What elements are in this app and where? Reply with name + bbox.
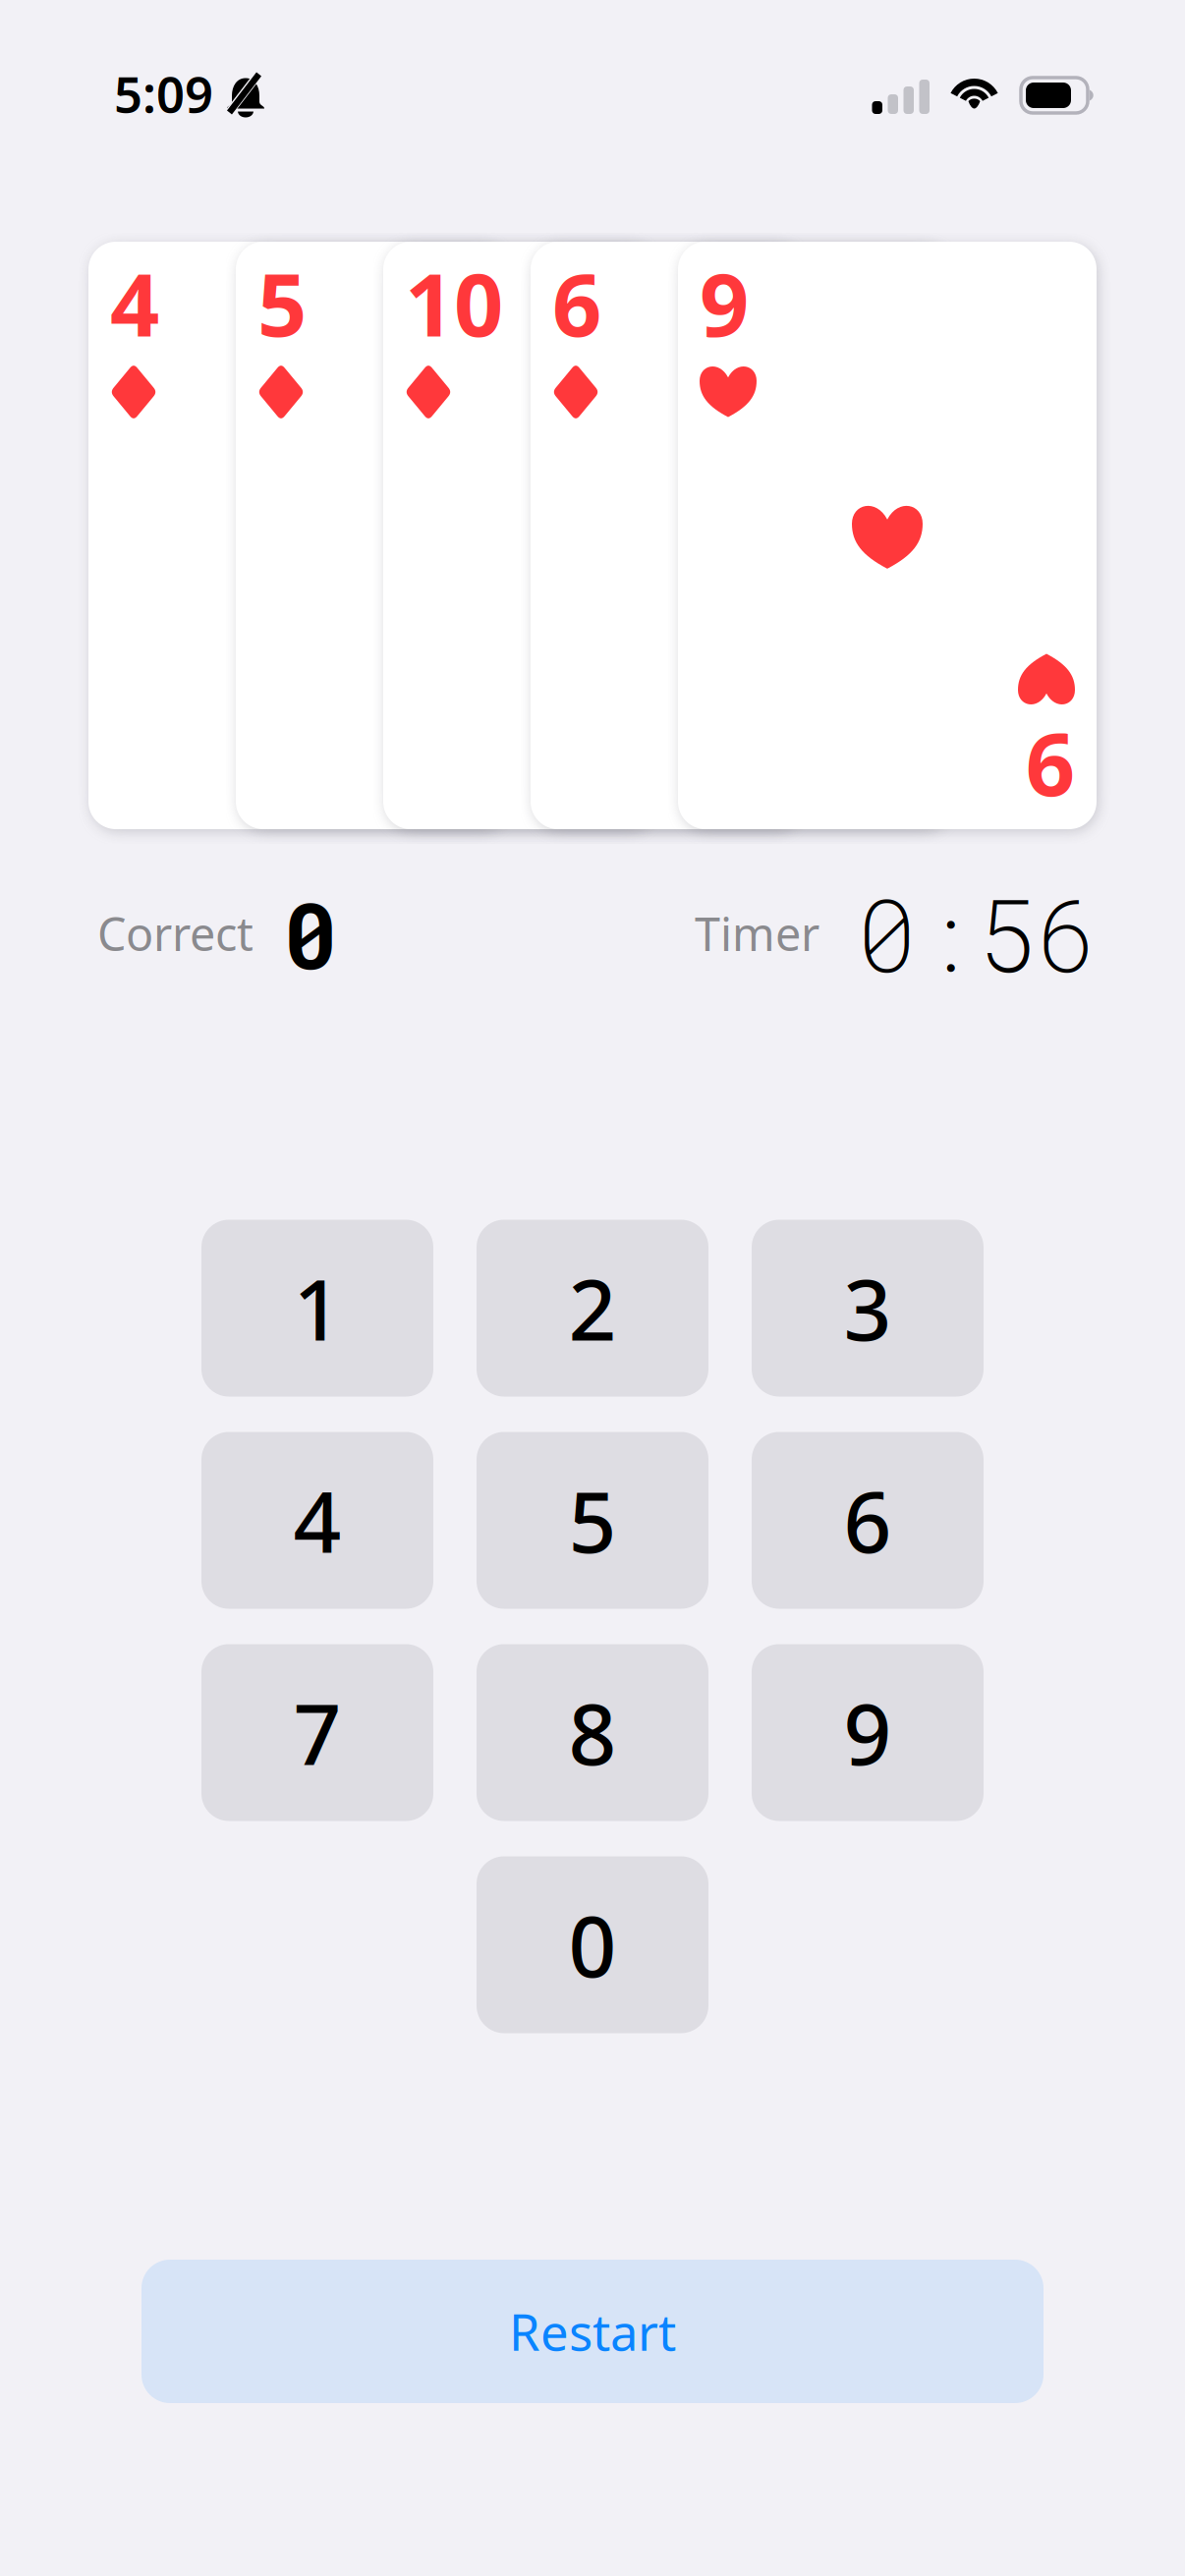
staticText: 5: [568, 1465, 617, 1576]
staticText: 6: [552, 246, 601, 360]
button[interactable]: 0: [477, 1856, 708, 2033]
staticText: 0:56: [857, 868, 1097, 999]
staticText: 2: [568, 1252, 617, 1364]
staticText: 10: [405, 246, 503, 360]
staticText: 6: [844, 1465, 892, 1576]
button[interactable]: 7: [201, 1644, 433, 1821]
button[interactable]: 6: [752, 1432, 984, 1609]
staticText: 4: [110, 246, 159, 360]
staticText: 5:09: [114, 60, 213, 126]
staticText: Restart: [509, 2298, 676, 2364]
staticText: 7: [293, 1677, 341, 1788]
staticText: 9: [700, 246, 749, 360]
button[interactable]: 1: [201, 1220, 433, 1397]
staticText: 9: [844, 1677, 892, 1788]
button[interactable]: 4: [201, 1432, 433, 1609]
staticText: Timer: [695, 903, 819, 964]
button[interactable]: 5: [477, 1432, 708, 1609]
staticText: 0: [283, 873, 338, 994]
staticText: 5: [257, 246, 307, 360]
staticText: 1: [293, 1252, 341, 1364]
button[interactable]: 3: [752, 1220, 984, 1397]
button[interactable]: 8: [477, 1644, 708, 1821]
staticText: 0: [568, 1889, 617, 2000]
button[interactable]: Restart: [141, 2260, 1044, 2403]
staticText: 9: [1018, 593, 1067, 708]
staticText: Correct: [97, 903, 254, 964]
staticText: 4: [293, 1465, 341, 1576]
button[interactable]: 9: [752, 1644, 984, 1821]
staticText: 3: [844, 1252, 892, 1364]
staticText: 8: [568, 1677, 617, 1788]
button[interactable]: 2: [477, 1220, 708, 1397]
